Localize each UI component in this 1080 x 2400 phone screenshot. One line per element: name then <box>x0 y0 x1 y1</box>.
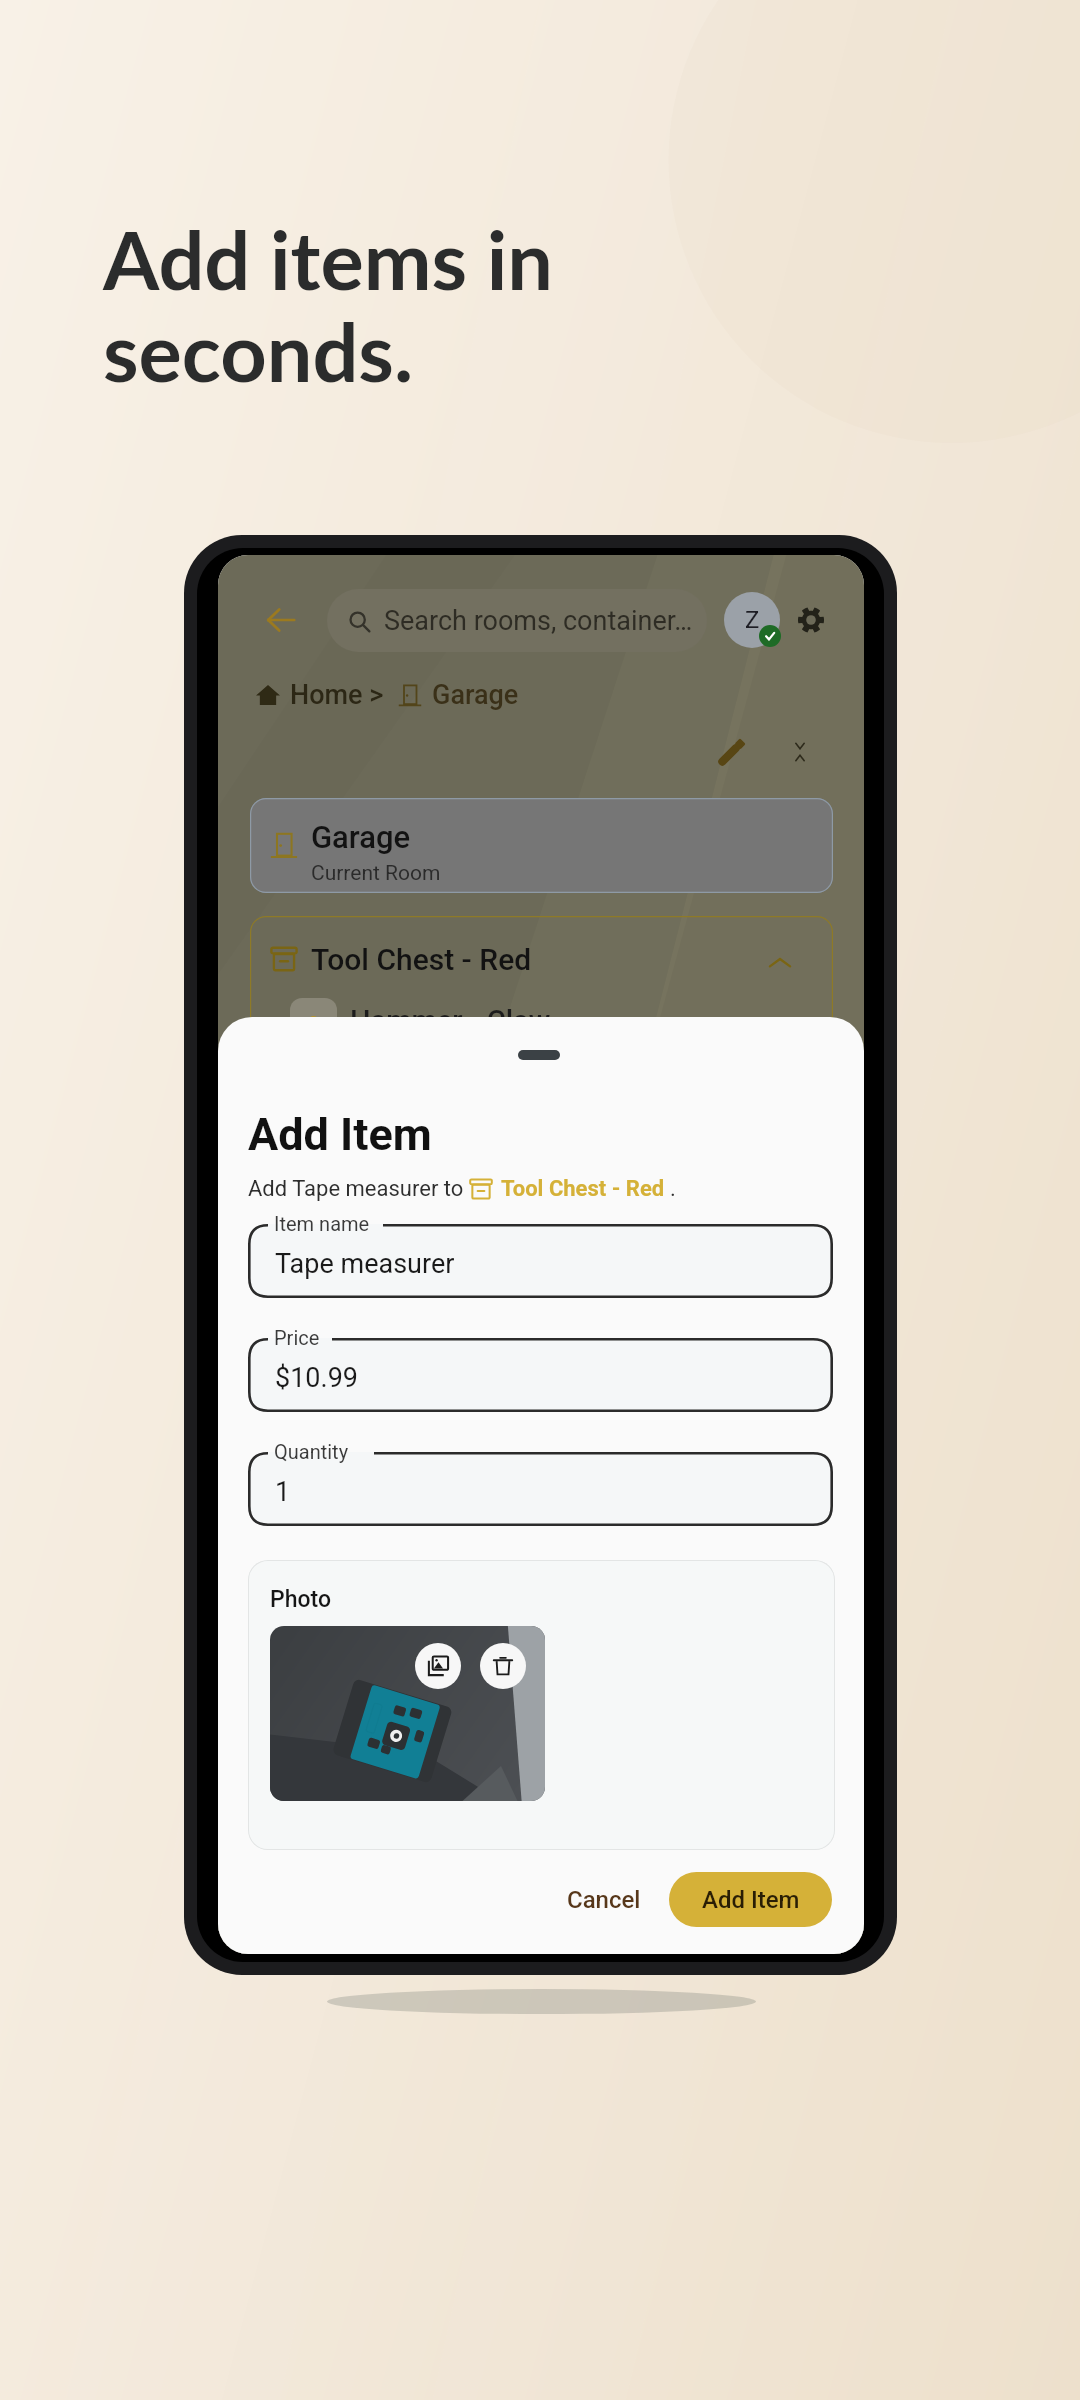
staticText: . <box>670 1176 676 1202</box>
staticText: Home > <box>290 679 384 711</box>
staticText: 1 <box>275 1476 291 1508</box>
staticText: Tape measurer <box>275 1248 455 1280</box>
staticText: Search rooms, container… <box>384 605 693 637</box>
button[interactable]: Cancel <box>538 1872 670 1927</box>
button[interactable]: Add Item <box>669 1872 832 1927</box>
staticText: Add items in seconds. <box>103 210 554 400</box>
staticText: Add Item <box>248 1108 432 1161</box>
staticText: Price <box>274 1326 320 1349</box>
button[interactable]: Settings <box>789 598 833 642</box>
staticText: Garage <box>432 679 519 711</box>
staticText: Add Tape measurer to <box>248 1176 469 1202</box>
button[interactable]: Change photo <box>415 1643 461 1689</box>
staticText: Z <box>745 606 760 634</box>
button[interactable]: Account <box>724 592 780 648</box>
staticText: Current Room <box>311 861 441 886</box>
button[interactable]: Edit <box>710 731 752 773</box>
button[interactable]: Home > <box>256 677 519 713</box>
staticText: Photo <box>270 1586 331 1613</box>
button[interactable] <box>248 1224 833 1298</box>
button[interactable]: Back <box>259 598 303 642</box>
button[interactable] <box>248 1452 833 1526</box>
staticText: Add Item <box>702 1886 800 1914</box>
staticText: Quantity <box>274 1440 349 1463</box>
button[interactable]: Garage <box>250 798 833 893</box>
staticText: Hammer - Claw <box>350 1004 551 1038</box>
staticText: Item name <box>274 1212 370 1235</box>
button[interactable] <box>248 1338 833 1412</box>
button[interactable]: Tool Chest - Red <box>250 916 833 1038</box>
button[interactable]: Delete photo <box>480 1643 526 1689</box>
staticText: Tool Chest - Red <box>501 1176 665 1202</box>
staticText: Garage <box>311 819 411 855</box>
staticText: Cancel <box>567 1886 641 1914</box>
staticText: Tool Chest - Red <box>311 942 532 977</box>
button[interactable]: Search rooms, container… <box>327 589 707 652</box>
button[interactable]: Collapse all <box>781 733 819 771</box>
staticText: $10.99 <box>275 1362 358 1394</box>
